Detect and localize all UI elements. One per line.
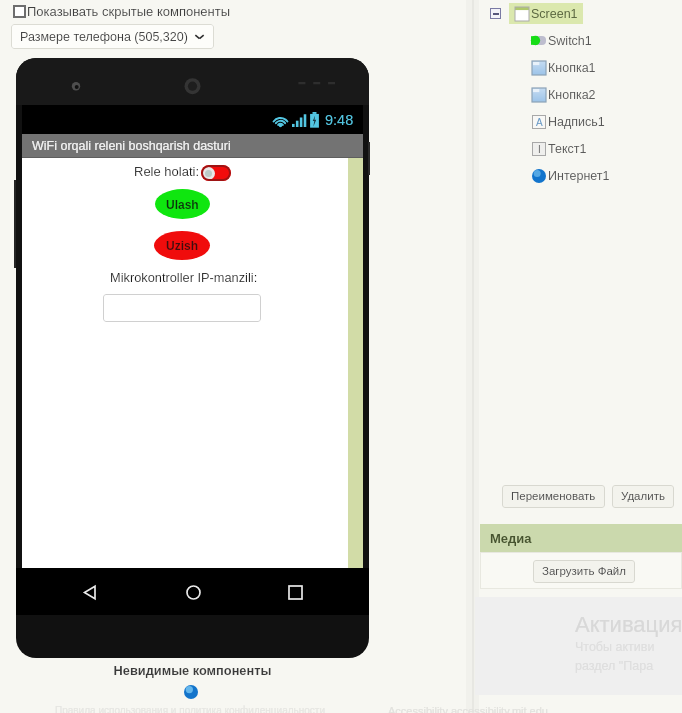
- staticText: Показывать скрытые компоненты: [27, 4, 231, 19]
- button[interactable]: Удалить: [612, 485, 674, 508]
- staticText: Загрузить Файл: [542, 565, 626, 578]
- staticText: Accessibility accessibility.mit.edu: [388, 705, 548, 713]
- staticText: I: [538, 144, 541, 155]
- staticText: Текст1: [548, 142, 587, 156]
- button[interactable]: Rele holati switch: [201, 165, 231, 181]
- button[interactable]: [103, 294, 261, 322]
- button[interactable]: Показывать скрытые компоненты: [13, 4, 231, 19]
- button[interactable]: Collapse: [490, 8, 501, 19]
- staticText: Rele holati:: [134, 164, 200, 179]
- staticText: раздел "Пара: [575, 659, 654, 673]
- button[interactable]: Ulash: [155, 189, 210, 219]
- button[interactable]: Home: [173, 572, 213, 612]
- button[interactable]: Кнопка1: [473, 54, 682, 81]
- staticText: Медиа: [490, 531, 532, 546]
- staticText: Размере телефона (505,320): [20, 30, 188, 44]
- staticText: Uzish: [166, 239, 199, 252]
- staticText: Screen1: [531, 7, 578, 21]
- button[interactable]: I: [473, 135, 682, 162]
- staticText: A: [536, 117, 543, 128]
- button[interactable]: Переименовать: [502, 485, 605, 508]
- staticText: 9:48: [325, 112, 354, 128]
- staticText: Кнопка2: [548, 88, 596, 102]
- staticText: Чтобы активи: [575, 640, 655, 654]
- button[interactable]: Uzish: [154, 231, 210, 260]
- button[interactable]: Switch1: [473, 27, 682, 54]
- button[interactable]: Размере телефона (505,320): [11, 24, 214, 49]
- staticText: Невидимые компоненты: [0, 663, 385, 677]
- button[interactable]: Recents: [275, 572, 315, 612]
- button[interactable]: Кнопка2: [473, 81, 682, 108]
- staticText: Интернет1: [548, 169, 610, 183]
- button[interactable]: Screen1: [473, 0, 682, 27]
- staticText: Кнопка1: [548, 61, 596, 75]
- staticText: Ulash: [166, 198, 199, 211]
- button[interactable]: Интернет1: [473, 162, 682, 189]
- staticText: WiFi orqali releni boshqarish dasturi: [32, 139, 231, 153]
- button[interactable]: A: [473, 108, 682, 135]
- staticText: Удалить: [621, 490, 665, 503]
- staticText: Switch1: [548, 34, 592, 48]
- button[interactable]: Загрузить Файл: [533, 560, 635, 583]
- staticText: Надпись1: [548, 115, 605, 129]
- staticText: Правила использования и политика конфиде…: [55, 705, 325, 713]
- staticText: Mikrokontroller IP-manzili:: [110, 270, 258, 284]
- staticText: Активация: [575, 612, 682, 637]
- staticText: Переименовать: [511, 490, 596, 503]
- button[interactable]: Back: [70, 572, 110, 612]
